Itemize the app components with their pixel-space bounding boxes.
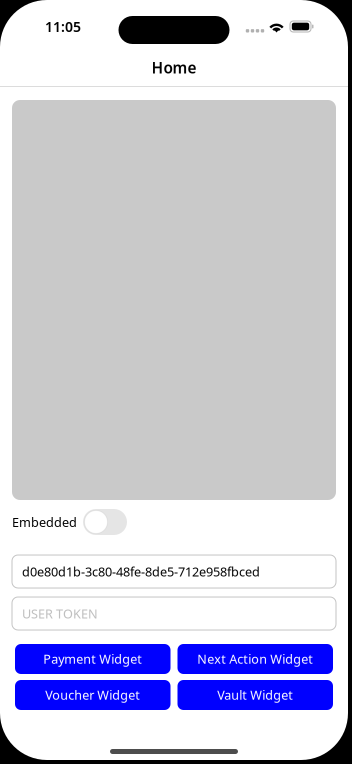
staticText: USER TOKEN bbox=[22, 605, 98, 622]
button[interactable]: Next Action Widget bbox=[177, 644, 333, 674]
staticText: Home bbox=[151, 57, 196, 78]
staticText: Vault Widget bbox=[217, 686, 293, 704]
button[interactable]: Voucher Widget bbox=[15, 680, 170, 710]
staticText: 11:05 bbox=[45, 17, 81, 36]
staticText: Voucher Widget bbox=[45, 686, 140, 704]
staticText: Payment Widget bbox=[43, 650, 142, 668]
button[interactable]: Vault Widget bbox=[177, 680, 333, 710]
button[interactable]: Embedded bbox=[83, 509, 127, 535]
staticText: d0e80d1b-3c80-48fe-8de5-712e958fbced bbox=[22, 563, 260, 580]
staticText: Embedded bbox=[12, 513, 77, 531]
button[interactable]: Payment Widget bbox=[15, 644, 170, 674]
staticText: Next Action Widget bbox=[197, 650, 313, 668]
